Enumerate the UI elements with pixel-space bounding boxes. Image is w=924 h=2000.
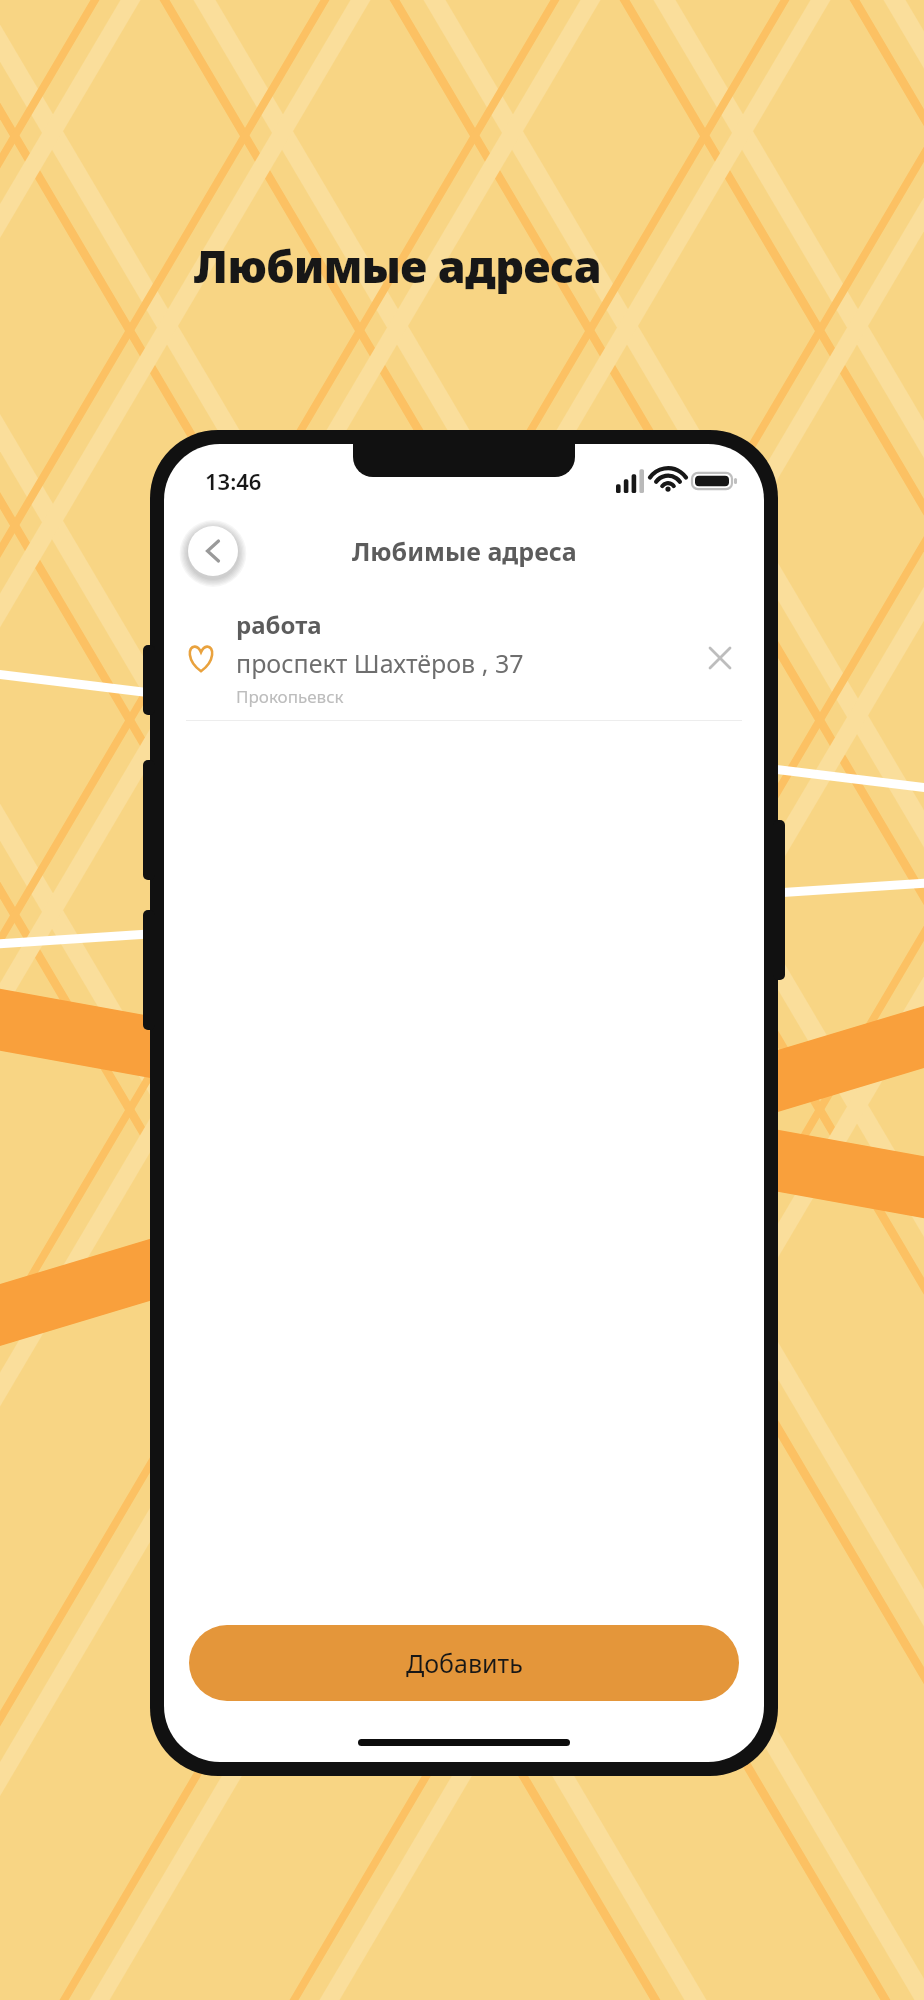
staticText: 13:46 xyxy=(205,466,262,496)
staticText: проспект Шахтёров , 37 xyxy=(236,646,524,680)
button[interactable]: работа xyxy=(164,596,764,720)
button[interactable]: Back xyxy=(188,526,238,576)
staticText: Любимые адреса xyxy=(194,235,602,296)
staticText: работа xyxy=(236,608,322,641)
button[interactable]: Remove xyxy=(698,636,742,680)
button[interactable]: Добавить xyxy=(189,1625,739,1701)
staticText: Добавить xyxy=(406,1646,523,1680)
staticText: Любимые адреса xyxy=(352,534,577,568)
staticText: Прокопьевск xyxy=(236,685,344,708)
